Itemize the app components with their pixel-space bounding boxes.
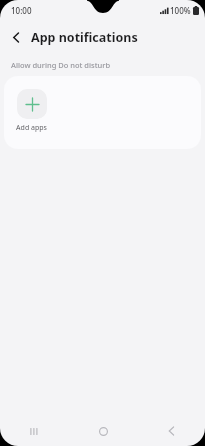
staticText: 10:00 (11, 5, 32, 16)
button[interactable]: Back (137, 416, 205, 446)
staticText: Allow during Do not disturb (11, 60, 111, 70)
staticText: 100% (170, 5, 191, 16)
staticText: App notifications (31, 29, 138, 46)
staticText: Add apps (16, 123, 47, 133)
button[interactable]: Back (5, 26, 27, 48)
button[interactable]: Recents (0, 416, 69, 446)
button[interactable]: Add apps (14, 87, 49, 135)
button[interactable]: Home (69, 416, 137, 446)
